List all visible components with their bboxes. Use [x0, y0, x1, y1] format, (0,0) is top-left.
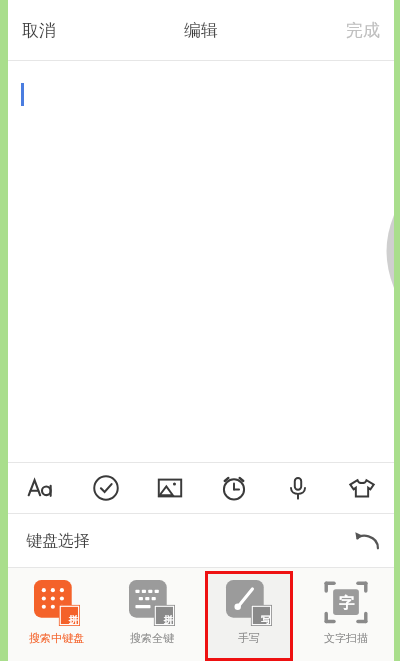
- staticText: 文字扫描: [324, 631, 368, 645]
- button[interactable]: Checklist: [73, 463, 138, 513]
- staticText: 写: [261, 614, 270, 625]
- button[interactable]: Sticker: [330, 463, 394, 513]
- staticText: 编辑: [184, 20, 218, 41]
- button[interactable]: 拼: [129, 568, 175, 661]
- button[interactable]: Insert image: [138, 463, 202, 513]
- staticText: 搜索中键盘: [29, 631, 84, 645]
- button[interactable]: Text format: [8, 463, 73, 513]
- staticText: 搜索全键: [130, 631, 174, 645]
- staticText: 手写: [238, 631, 260, 645]
- button[interactable]: 完成: [332, 10, 394, 51]
- staticText: 键盘选择: [26, 531, 90, 551]
- staticText: 完成: [346, 20, 380, 41]
- button[interactable]: 取消: [8, 10, 70, 51]
- button[interactable]: 写: [226, 568, 272, 661]
- staticText: 拼: [164, 614, 173, 625]
- button[interactable]: 字: [323, 568, 369, 661]
- button[interactable]: 键盘选择: [8, 514, 394, 567]
- button[interactable]: Undo: [354, 528, 380, 554]
- staticText: 取消: [22, 20, 56, 41]
- staticText: 拼: [69, 614, 78, 625]
- button[interactable]: 拼: [29, 568, 84, 661]
- staticText: 字: [339, 594, 354, 613]
- button[interactable]: Voice input: [266, 463, 330, 513]
- button[interactable]: Reminder: [202, 463, 266, 513]
